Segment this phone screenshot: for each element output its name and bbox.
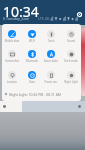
button[interactable]: Sound	[61, 30, 81, 44]
button[interactable]: Torch	[41, 30, 61, 44]
staticText: Mobile data	[2, 39, 22, 43]
staticText: Screenshot	[2, 59, 22, 63]
button[interactable]: Dark mode	[61, 50, 81, 64]
staticText: Night Light	[61, 80, 81, 84]
staticText: Power sav.	[41, 80, 61, 84]
button[interactable]: Screenshot	[2, 50, 22, 64]
staticText: 6 Tuesday, June	[3, 16, 30, 21]
staticText: Night Light: 10:34 PM - 06:11 AM	[9, 92, 61, 97]
staticText: Sound	[61, 39, 81, 43]
staticText: Bluetooth	[22, 59, 42, 63]
button[interactable]: Power sav.	[41, 71, 61, 85]
button[interactable]: Data	[22, 71, 42, 85]
button[interactable]: Location	[2, 71, 22, 85]
button[interactable]: Settings	[75, 10, 83, 18]
staticText: Data	[22, 80, 42, 84]
staticText: Wi-Fi	[22, 39, 42, 43]
staticText: Torch	[41, 39, 61, 43]
button[interactable]: Brightness	[0, 101, 85, 112]
button[interactable]: Bluetooth	[22, 50, 42, 64]
staticText: Auto-rotate	[41, 59, 61, 63]
staticText: 10:34	[3, 2, 39, 21]
button[interactable]: Auto-rotate	[41, 50, 61, 64]
staticText: Location	[2, 80, 22, 84]
staticText: LTE 4G	[38, 16, 50, 21]
button[interactable]: Night Light	[61, 71, 81, 85]
staticText: Dark mode	[61, 59, 81, 63]
button[interactable]: Wi-Fi	[22, 30, 42, 44]
button[interactable]: Mobile data	[2, 30, 22, 44]
